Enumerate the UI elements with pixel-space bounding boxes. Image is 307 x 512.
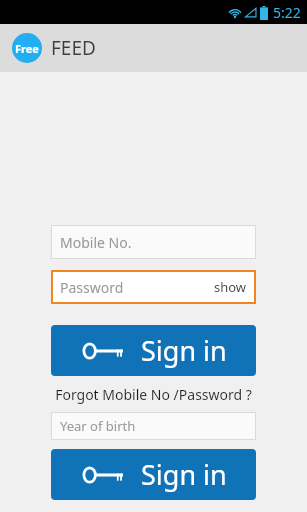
staticText: Sign in — [141, 332, 227, 369]
button[interactable]: Year of birth — [51, 412, 256, 440]
button[interactable]: show — [214, 278, 247, 296]
staticText: Mobile No. — [60, 233, 132, 252]
button[interactable]: Sign in — [51, 325, 256, 376]
button[interactable]: Sign in — [51, 449, 256, 500]
staticText: 5:22 — [273, 3, 301, 22]
button[interactable]: Mobile No. — [51, 225, 256, 259]
staticText: Sign in — [141, 456, 227, 493]
button[interactable]: Forgot Mobile No /Password ? — [55, 385, 252, 404]
staticText: Free — [15, 41, 39, 56]
button[interactable]: Password — [51, 270, 256, 304]
staticText: Year of birth — [60, 417, 136, 435]
staticText: Password — [60, 278, 124, 297]
staticText: FEED — [51, 35, 96, 61]
